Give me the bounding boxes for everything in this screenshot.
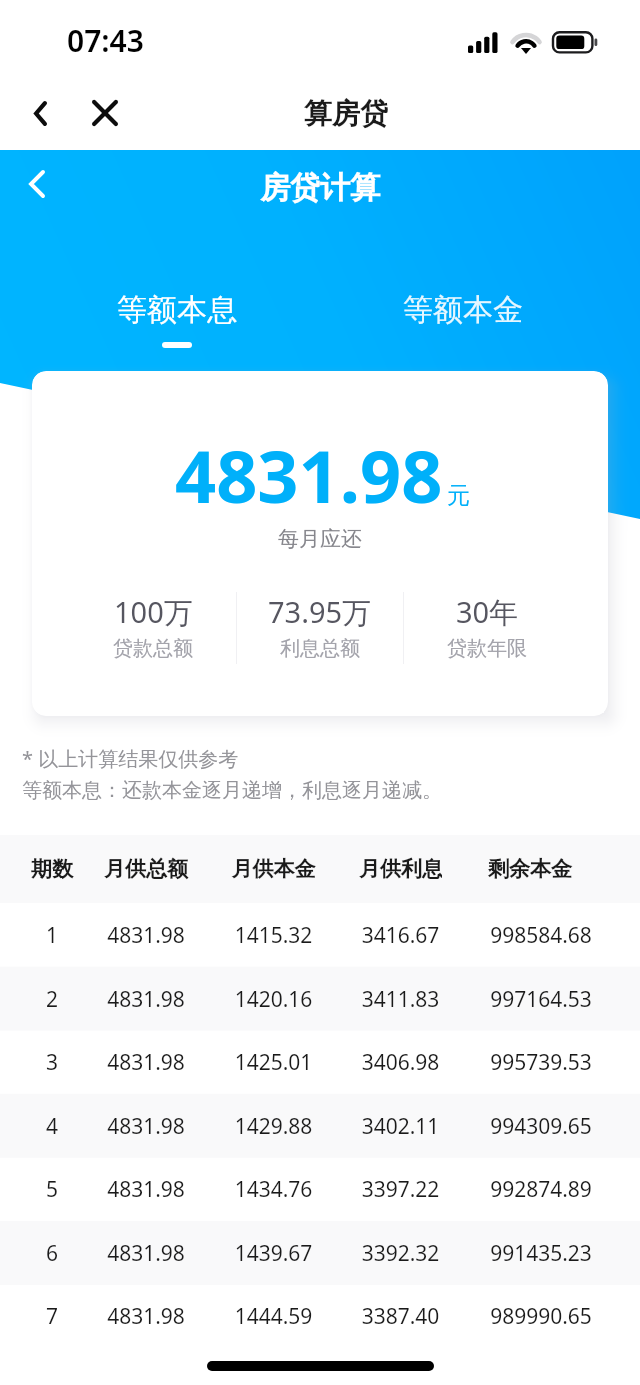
staticText: 等额本息：还款本金逐月递增，利息逐月递减。 xyxy=(22,778,442,803)
staticText: 月供本金 xyxy=(188,856,359,882)
staticText: 元 xyxy=(447,481,470,510)
button[interactable]: Back xyxy=(18,91,62,135)
staticText: 30年 xyxy=(456,592,519,632)
button[interactable]: 4 xyxy=(0,1094,640,1158)
staticText: 4831.98 xyxy=(104,921,188,950)
button[interactable]: 等额本金 xyxy=(320,289,606,352)
staticText: 5 xyxy=(0,1175,104,1204)
staticText: 等额本息 xyxy=(117,291,237,329)
staticText: 月供总额 xyxy=(104,856,188,882)
staticText: 994309.65 xyxy=(442,1112,640,1141)
staticText: 4831.98 xyxy=(104,1302,188,1331)
staticText: 07:43 xyxy=(67,20,144,61)
staticText: 992874.89 xyxy=(442,1175,640,1204)
button[interactable]: 2 xyxy=(0,967,640,1031)
staticText: 1444.59 xyxy=(188,1302,359,1331)
staticText: 贷款年限 xyxy=(447,636,527,661)
staticText: 3397.22 xyxy=(359,1175,442,1204)
staticText: 3406.98 xyxy=(359,1048,442,1077)
staticText: * 以上计算结果仅供参考 xyxy=(22,745,239,772)
staticText: 利息总额 xyxy=(280,636,360,661)
staticText: 房贷计算 xyxy=(260,169,380,207)
staticText: 4831.98 xyxy=(104,1175,188,1204)
button[interactable]: Back xyxy=(14,162,58,206)
staticText: 998584.68 xyxy=(442,921,640,950)
button[interactable]: 7 xyxy=(0,1284,640,1348)
staticText: 989990.65 xyxy=(442,1302,640,1331)
staticText: 3402.11 xyxy=(359,1112,442,1141)
staticText: 1425.01 xyxy=(188,1048,359,1077)
staticText: 997164.53 xyxy=(442,985,640,1014)
staticText: 3411.83 xyxy=(359,985,442,1014)
staticText: 3416.67 xyxy=(359,921,442,950)
staticText: 1429.88 xyxy=(188,1112,359,1141)
staticText: 991435.23 xyxy=(442,1239,640,1268)
staticText: 4831.98 xyxy=(104,1112,188,1141)
staticText: 期数 xyxy=(0,856,104,882)
staticText: 剩余本金 xyxy=(442,856,618,882)
staticText: 100万 xyxy=(114,592,193,632)
staticText: 995739.53 xyxy=(442,1048,640,1077)
staticText: 4831.98 xyxy=(104,1239,188,1268)
button[interactable]: 等额本息 xyxy=(34,289,320,352)
staticText: 算房贷 xyxy=(304,96,388,131)
staticText: 1434.76 xyxy=(188,1175,359,1204)
staticText: 73.95万 xyxy=(268,592,372,632)
staticText: 3 xyxy=(0,1048,104,1077)
staticText: 3392.32 xyxy=(359,1239,442,1268)
staticText: 1 xyxy=(0,921,104,950)
button[interactable]: 1 xyxy=(0,903,640,967)
staticText: 7 xyxy=(0,1302,104,1331)
staticText: 1439.67 xyxy=(188,1239,359,1268)
button[interactable]: 6 xyxy=(0,1221,640,1285)
staticText: 等额本金 xyxy=(403,291,523,329)
staticText: 4831.98 xyxy=(104,985,188,1014)
staticText: 4831.98 xyxy=(175,426,443,524)
staticText: 4 xyxy=(0,1112,104,1141)
staticText: 6 xyxy=(0,1239,104,1268)
staticText: 每月应还 xyxy=(278,526,362,552)
staticText: 月供利息 xyxy=(359,856,442,882)
button[interactable]: 3 xyxy=(0,1030,640,1094)
button[interactable]: 5 xyxy=(0,1157,640,1221)
staticText: 1415.32 xyxy=(188,921,359,950)
staticText: 贷款总额 xyxy=(113,636,193,661)
button[interactable]: Close xyxy=(83,91,127,135)
staticText: 3387.40 xyxy=(359,1302,442,1331)
staticText: 4831.98 xyxy=(104,1048,188,1077)
staticText: 1420.16 xyxy=(188,985,359,1014)
staticText: 2 xyxy=(0,985,104,1014)
